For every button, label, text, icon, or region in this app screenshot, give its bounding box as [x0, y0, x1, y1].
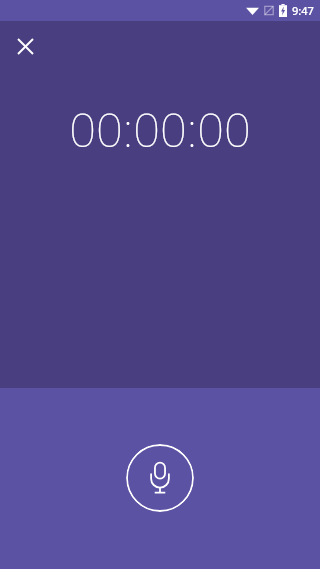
staticText: 00:00:00: [69, 97, 251, 161]
button[interactable]: Close: [7, 28, 43, 64]
button[interactable]: Record with microphone: [126, 444, 194, 512]
staticText: 9:47: [292, 3, 314, 18]
